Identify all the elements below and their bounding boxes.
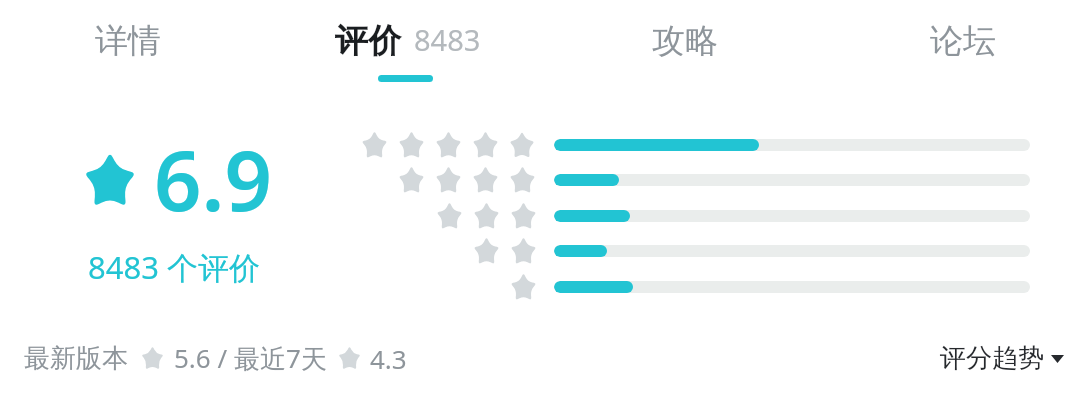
button[interactable]: 5 star ratings	[360, 127, 1030, 163]
staticText: 详情	[95, 20, 161, 62]
button[interactable]: 评价	[273, 0, 543, 96]
staticText: 评分趋势	[940, 342, 1044, 375]
button[interactable]: 4 star ratings	[360, 162, 1030, 198]
staticText: 评价	[335, 20, 401, 62]
button[interactable]: Overall rating 6.9 from 8483 reviews	[20, 130, 320, 300]
button[interactable]: 详情	[0, 0, 263, 96]
button[interactable]: 1 star ratings	[360, 269, 1030, 305]
staticText: 8483	[414, 20, 481, 59]
button[interactable]: 3 star ratings	[360, 198, 1030, 234]
staticText: 5.6 / 最近7天	[174, 340, 327, 376]
button[interactable]: 2 star ratings	[360, 233, 1030, 269]
staticText: 6.9	[154, 122, 272, 235]
button[interactable]: 攻略	[550, 0, 820, 96]
staticText: 最新版本	[24, 342, 128, 375]
staticText: 攻略	[652, 20, 718, 62]
staticText: 4.3	[370, 341, 407, 376]
staticText: 8483 个评价	[88, 246, 260, 288]
button[interactable]: 评分趋势	[940, 336, 1064, 381]
staticText: 论坛	[930, 20, 996, 62]
button[interactable]: 论坛	[828, 0, 1080, 96]
